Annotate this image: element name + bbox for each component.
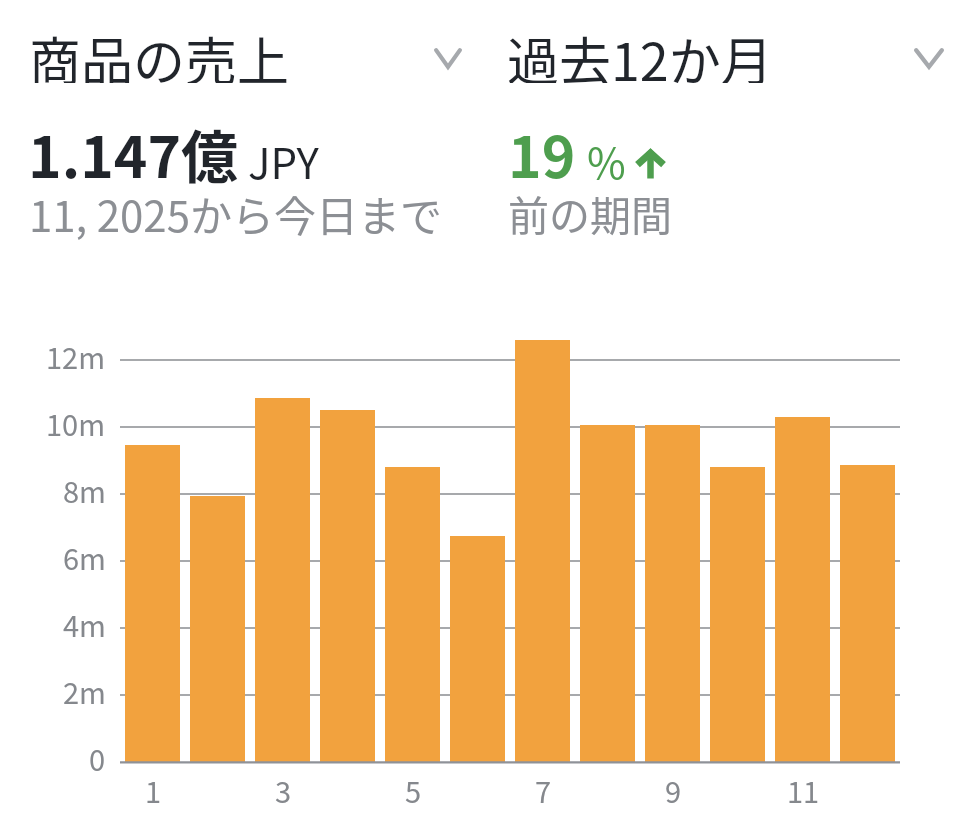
staticText: 1 [145,769,162,811]
staticText: 5 [405,769,422,811]
staticText: % [587,130,626,191]
staticText: 0 [89,737,106,779]
staticText: 4m [63,603,106,645]
staticText: 過去12か月 [507,21,773,83]
staticText: 2m [63,670,106,712]
staticText: JPY [248,130,319,191]
staticText: 19 [508,112,576,195]
staticText: 11, 2025から今日まで [29,183,442,244]
staticText: 前の期間 [508,183,672,242]
staticText: 12m [46,335,106,377]
staticText: 商品の売上 [29,21,290,83]
staticText: 8m [63,469,106,511]
button[interactable]: 商品の売上 [29,24,458,86]
staticText: 3 [275,769,292,811]
button[interactable]: 過去12か月 [507,24,947,86]
staticText: 10m [46,402,106,444]
staticText: 6m [63,536,106,578]
staticText: 11 [787,769,820,811]
staticText: 7 [535,769,552,811]
staticText: 9 [665,769,682,811]
staticText: 1.147億 [28,112,239,195]
